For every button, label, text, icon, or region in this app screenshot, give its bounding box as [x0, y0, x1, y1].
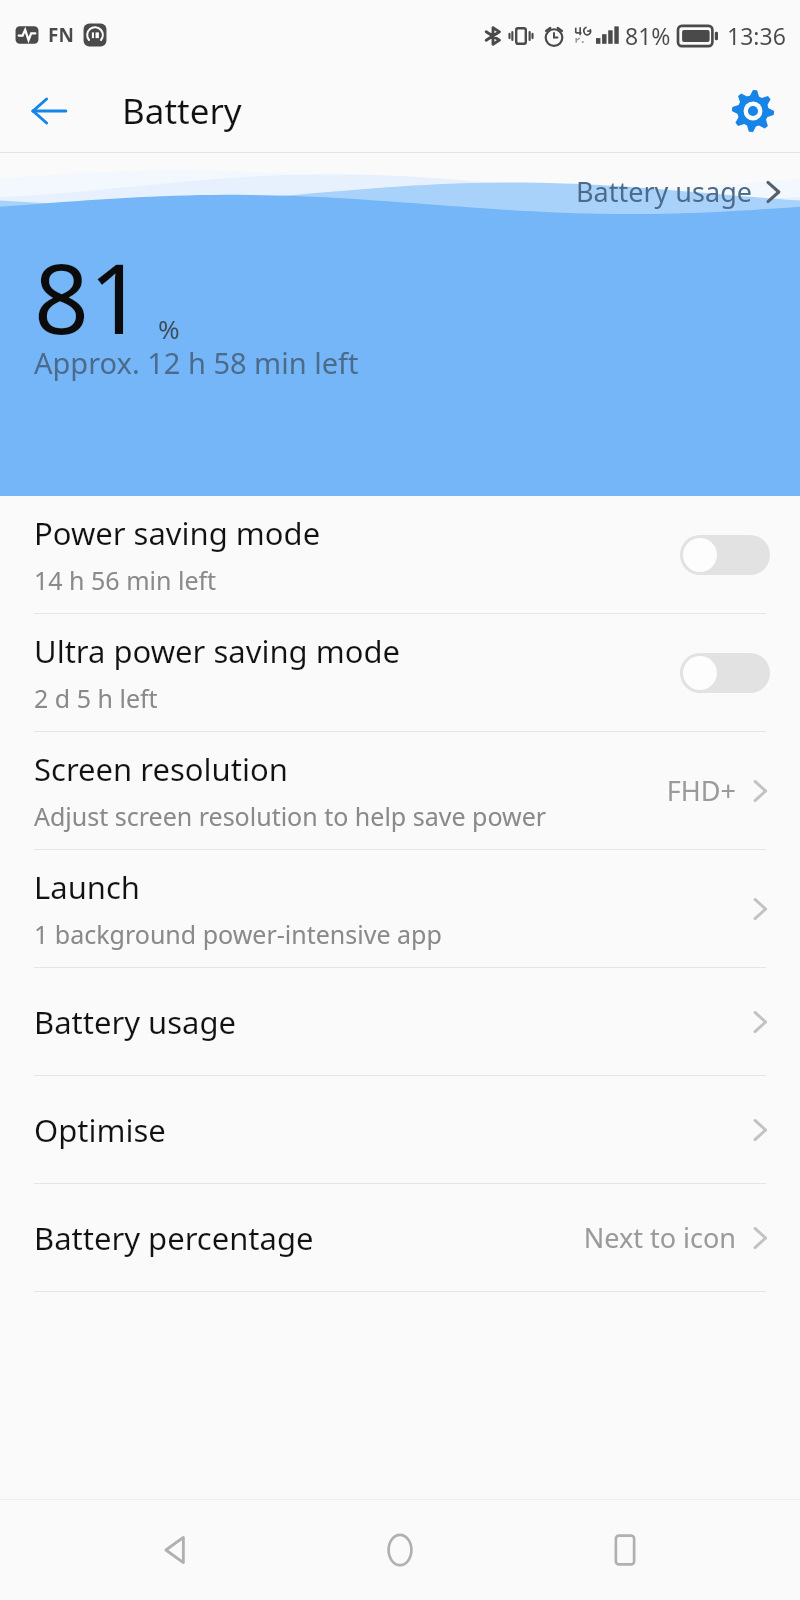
staticText: Launch [34, 866, 140, 908]
button[interactable]: Ultra power saving mode [0, 614, 800, 731]
staticText: Ultra power saving mode [34, 630, 400, 672]
staticText: 1 background power-intensive app [34, 917, 442, 951]
staticText: Battery usage [576, 173, 752, 210]
button[interactable]: Battery percentage [0, 1184, 800, 1291]
staticText: Power saving mode [34, 512, 321, 554]
staticText: Next to icon [583, 1219, 736, 1256]
button[interactable]: Back [20, 82, 78, 140]
staticText: 14 h 56 min left [34, 563, 217, 597]
staticText: 81 [34, 231, 144, 362]
button[interactable]: Optimise [0, 1076, 800, 1183]
button[interactable]: Settings [724, 82, 782, 140]
staticText: Adjust screen resolution to help save po… [34, 799, 547, 833]
button[interactable]: Launch [0, 850, 800, 967]
staticText: Battery [122, 87, 242, 135]
staticText: FHD+ [666, 772, 736, 809]
staticText: Approx. 12 h 58 min left [34, 343, 359, 382]
button[interactable]: Recent apps [575, 1500, 675, 1600]
staticText: Screen resolution [34, 748, 288, 790]
staticText: % [158, 311, 180, 346]
button[interactable]: Screen resolution [0, 732, 800, 849]
staticText: 2 d 5 h left [34, 681, 158, 715]
staticText: Battery usage [34, 1001, 237, 1043]
button[interactable]: Home [350, 1500, 450, 1600]
staticText: FN [48, 22, 74, 48]
staticText: Optimise [34, 1109, 166, 1151]
button[interactable]: Ultra power saving mode toggle, off [680, 653, 770, 693]
button[interactable]: Back [125, 1500, 225, 1600]
button[interactable]: Battery usage [572, 169, 786, 214]
button[interactable]: Power saving mode [0, 496, 800, 613]
staticText: 81% [625, 20, 671, 51]
button[interactable]: Battery usage [0, 968, 800, 1075]
staticText: 13:36 [727, 20, 786, 51]
staticText: Battery percentage [34, 1217, 314, 1259]
button[interactable]: Power saving mode toggle, off [680, 535, 770, 575]
